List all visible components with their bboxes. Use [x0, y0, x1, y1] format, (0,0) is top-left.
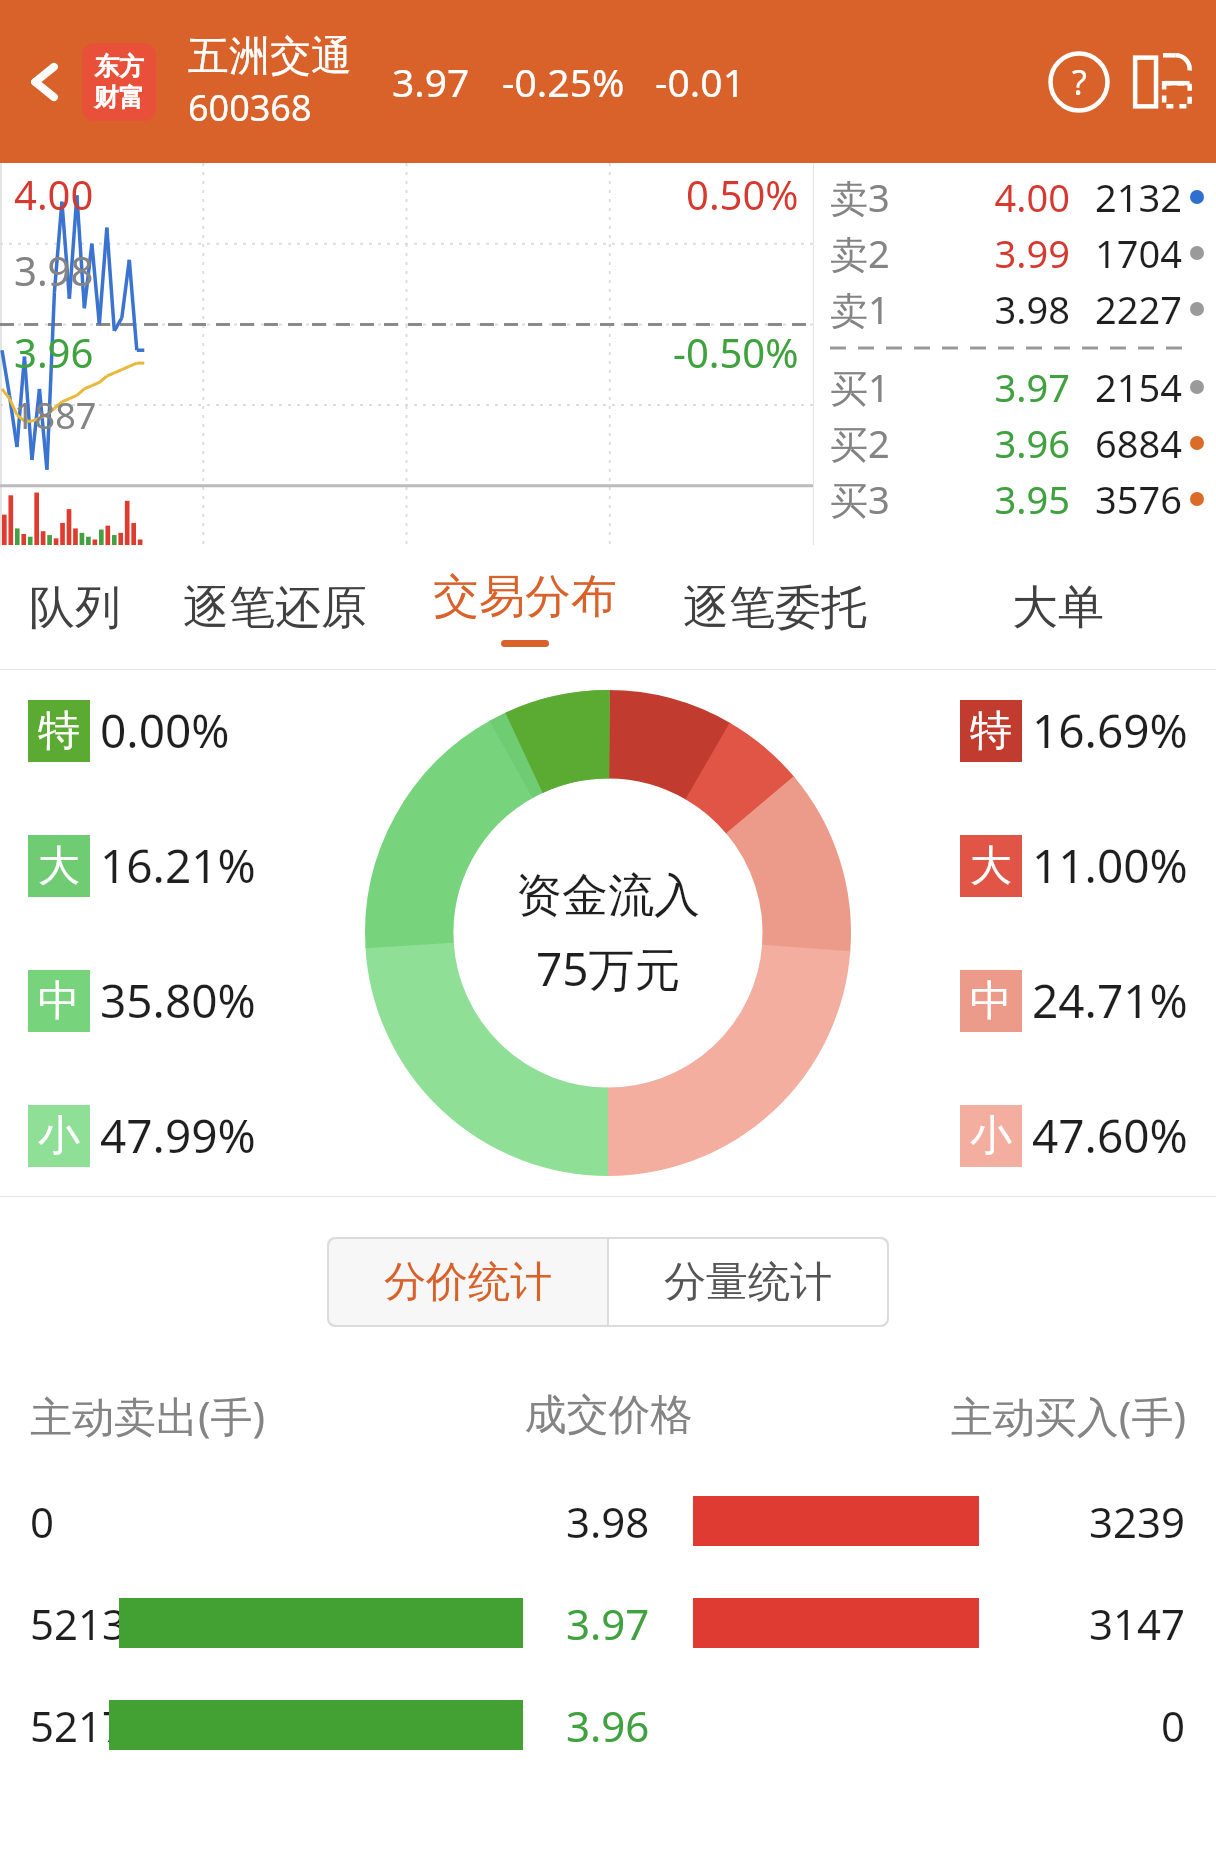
staticText: 11.00% — [1032, 834, 1188, 897]
button[interactable]: 中 — [960, 969, 1188, 1032]
staticText: 0.00% — [100, 699, 230, 762]
button[interactable]: 卖2 — [830, 225, 1204, 281]
staticText: 0.50% — [686, 167, 799, 221]
staticText: -0.25% — [502, 55, 625, 108]
button[interactable]: 分价统计 — [329, 1239, 607, 1325]
button[interactable]: 卖1 — [830, 281, 1204, 337]
button[interactable]: 大单 — [900, 545, 1216, 670]
staticText: 交易分布 — [433, 568, 617, 626]
staticText: 队列 — [29, 579, 121, 637]
button[interactable]: 买1 — [830, 359, 1204, 415]
staticText: 成交价格 — [416, 1389, 801, 1442]
staticText: 分价统计 — [384, 1256, 552, 1309]
button[interactable]: Switch layout — [1128, 47, 1198, 117]
button[interactable]: 大 — [28, 834, 256, 897]
staticText: 3.98 — [930, 283, 1070, 335]
button[interactable]: 0 — [30, 1484, 1186, 1558]
staticText: -0.50% — [673, 325, 799, 379]
staticText: 75万元 — [536, 937, 681, 1000]
staticText: ? — [1072, 59, 1087, 105]
staticText: 中 — [38, 975, 80, 1028]
staticText: 0 — [30, 1493, 55, 1550]
staticText: 2227 — [1080, 283, 1182, 335]
staticText: 卖2 — [830, 227, 930, 279]
staticText: 卖3 — [830, 171, 930, 223]
staticText: 买3 — [830, 473, 930, 525]
staticText: 逐笔还原 — [183, 579, 367, 637]
staticText: 3576 — [1080, 473, 1182, 525]
button[interactable]: 逐笔委托 — [650, 545, 900, 670]
staticText: 资金流入 — [516, 867, 700, 925]
staticText: 3147 — [1089, 1595, 1186, 1652]
button[interactable]: 买2 — [830, 415, 1204, 471]
staticText: 大 — [970, 840, 1012, 893]
staticText: 1887 — [14, 391, 97, 440]
button[interactable]: 分量统计 — [609, 1239, 887, 1325]
staticText: 五洲交通 — [188, 31, 352, 83]
staticText: 2132 — [1080, 171, 1182, 223]
button[interactable]: 小 — [960, 1104, 1188, 1167]
button[interactable]: 大 — [960, 834, 1188, 897]
staticText: 主动买入(手) — [801, 1387, 1186, 1444]
button[interactable]: 5213 — [30, 1586, 1186, 1660]
staticText: 3.97 — [392, 55, 470, 108]
staticText: 小 — [38, 1110, 80, 1163]
staticText: 0 — [1161, 1697, 1186, 1754]
staticText: 3.95 — [930, 473, 1070, 525]
staticText: 4.00 — [14, 167, 94, 221]
button[interactable]: 特 — [960, 699, 1188, 762]
staticText: 3.96 — [930, 417, 1070, 469]
staticText: 3.99 — [930, 227, 1070, 279]
staticText: 24.71% — [1032, 969, 1188, 1032]
button[interactable]: 交易分布 — [400, 545, 650, 670]
staticText: 16.21% — [100, 834, 256, 897]
staticText: 逐笔委托 — [683, 579, 867, 637]
staticText: 3.98 — [566, 1493, 650, 1550]
staticText: -0.01 — [655, 55, 745, 108]
button[interactable]: 小 — [28, 1104, 256, 1167]
staticText: 1704 — [1080, 227, 1182, 279]
staticText: 特 — [970, 705, 1012, 758]
staticText: 3.96 — [566, 1697, 650, 1754]
staticText: 东方 — [94, 51, 144, 82]
staticText: 卖1 — [830, 283, 930, 335]
button[interactable]: 特 — [28, 699, 230, 762]
staticText: 大单 — [1012, 579, 1104, 637]
staticText: 35.80% — [100, 969, 256, 1032]
staticText: 5217 — [30, 1697, 127, 1754]
staticText: 小 — [970, 1110, 1012, 1163]
staticText: 6884 — [1080, 417, 1182, 469]
staticText: 3.96 — [14, 325, 94, 379]
staticText: 3239 — [1089, 1493, 1186, 1550]
staticText: 47.60% — [1032, 1104, 1188, 1167]
staticText: 买1 — [830, 361, 930, 413]
staticText: 特 — [38, 705, 80, 758]
button[interactable]: 中 — [28, 969, 256, 1032]
button[interactable]: East Money logo — [82, 43, 156, 121]
button[interactable]: 逐笔还原 — [150, 545, 400, 670]
staticText: 5213 — [30, 1595, 127, 1652]
button[interactable]: 卖3 — [830, 169, 1204, 225]
staticText: 中 — [970, 975, 1012, 1028]
staticText: 主动卖出(手) — [30, 1387, 416, 1444]
button[interactable]: 队列 — [0, 545, 150, 670]
staticText: 4.00 — [930, 171, 1070, 223]
staticText: 3.98 — [14, 243, 94, 297]
button[interactable]: 买3 — [830, 471, 1204, 527]
staticText: 3.97 — [566, 1595, 650, 1652]
button[interactable]: 5217 — [30, 1688, 1186, 1762]
staticText: 2154 — [1080, 361, 1182, 413]
staticText: 3.97 — [930, 361, 1070, 413]
staticText: 16.69% — [1032, 699, 1188, 762]
staticText: 47.99% — [100, 1104, 256, 1167]
button[interactable]: Back — [18, 54, 74, 110]
staticText: 大 — [38, 840, 80, 893]
staticText: 600368 — [188, 83, 312, 132]
staticText: 财富 — [94, 82, 144, 113]
staticText: 买2 — [830, 417, 930, 469]
staticText: 分量统计 — [664, 1256, 832, 1309]
button[interactable]: Help — [1044, 47, 1114, 117]
